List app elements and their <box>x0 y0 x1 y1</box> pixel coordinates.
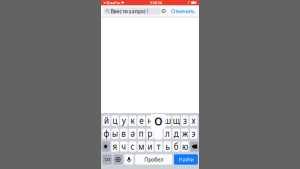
button[interactable]: г <box>155 116 162 126</box>
button[interactable]: ж <box>181 128 189 139</box>
button[interactable]: щ <box>172 116 180 126</box>
button[interactable]: ш <box>164 116 171 126</box>
button[interactable]: а <box>129 128 136 139</box>
staticText: О <box>154 114 162 128</box>
staticText: ↑ <box>187 0 191 5</box>
staticText: ◀ <box>103 1 105 4</box>
button[interactable]: ы <box>111 128 119 139</box>
staticText: Найти <box>178 156 193 163</box>
button[interactable]: д <box>172 128 180 139</box>
button[interactable]: Delete <box>190 141 199 152</box>
staticText: п <box>139 128 144 139</box>
staticText: м <box>138 141 144 152</box>
staticText: с <box>131 141 135 152</box>
button[interactable]: е <box>137 116 145 126</box>
button[interactable]: Пробел <box>135 154 172 165</box>
button[interactable]: у <box>120 116 128 126</box>
staticText: ш <box>164 115 171 126</box>
staticText: б <box>174 141 179 152</box>
staticText: е <box>139 115 143 126</box>
button[interactable]: и <box>146 141 154 152</box>
button[interactable]: й <box>103 116 110 126</box>
button[interactable]: м <box>137 141 145 152</box>
staticText: у <box>122 115 126 126</box>
button[interactable]: в <box>120 128 128 139</box>
button[interactable]: б <box>172 141 180 152</box>
button[interactable]: ф <box>103 128 110 139</box>
staticText: д <box>174 128 179 139</box>
staticText: з <box>183 115 187 126</box>
button[interactable]: Отменить <box>171 7 195 15</box>
staticText: ч <box>121 141 126 152</box>
staticText: р <box>147 128 152 139</box>
staticText: й <box>104 115 109 126</box>
staticText: л <box>165 128 170 139</box>
button[interactable]: ч <box>120 141 128 152</box>
staticText: 123 <box>104 157 110 162</box>
button[interactable]: Найти <box>174 154 198 165</box>
button[interactable]: ь <box>164 141 171 152</box>
button[interactable]: к <box>129 116 136 126</box>
button[interactable]: п <box>137 128 145 139</box>
staticText: ю <box>182 141 188 152</box>
button[interactable]: р <box>146 128 154 139</box>
staticText: ь <box>165 141 169 152</box>
staticText: SlowFox <box>105 0 121 5</box>
button[interactable]: х <box>190 116 197 126</box>
staticText: г <box>157 115 161 126</box>
staticText: в <box>121 128 126 139</box>
button[interactable]: Clear search field <box>161 9 166 13</box>
button[interactable]: т <box>155 141 162 152</box>
staticText: я <box>113 141 118 152</box>
button[interactable]: н <box>146 116 154 126</box>
button[interactable]: э <box>190 128 197 139</box>
button[interactable]: з <box>181 116 189 126</box>
staticText: ы <box>112 128 118 139</box>
staticText: Отменить <box>171 7 195 15</box>
staticText: щ <box>173 115 180 126</box>
button[interactable]: я <box>111 141 119 152</box>
staticText: к <box>131 115 135 126</box>
staticText: ф <box>103 128 109 139</box>
staticText: э <box>192 128 196 139</box>
staticText: Ввести запрос <box>111 7 147 15</box>
button[interactable]: ю <box>181 141 189 152</box>
button[interactable]: Dictate <box>124 154 134 165</box>
staticText: т <box>157 141 161 152</box>
staticText: н <box>147 115 152 126</box>
staticText: ц <box>113 115 118 126</box>
button[interactable]: с <box>129 141 136 152</box>
staticText: Пробел <box>144 156 163 163</box>
staticText: 9:58:34 <box>150 0 162 5</box>
staticText: х <box>192 115 196 126</box>
staticText: и <box>147 141 152 152</box>
button[interactable]: ц <box>111 116 119 126</box>
button[interactable]: Next keyboard <box>113 154 123 165</box>
button[interactable]: 123 <box>102 154 112 165</box>
staticText: а <box>131 128 135 139</box>
button[interactable]: л <box>164 128 171 139</box>
staticText: ж <box>182 128 188 139</box>
button[interactable]: Shift <box>101 141 110 152</box>
